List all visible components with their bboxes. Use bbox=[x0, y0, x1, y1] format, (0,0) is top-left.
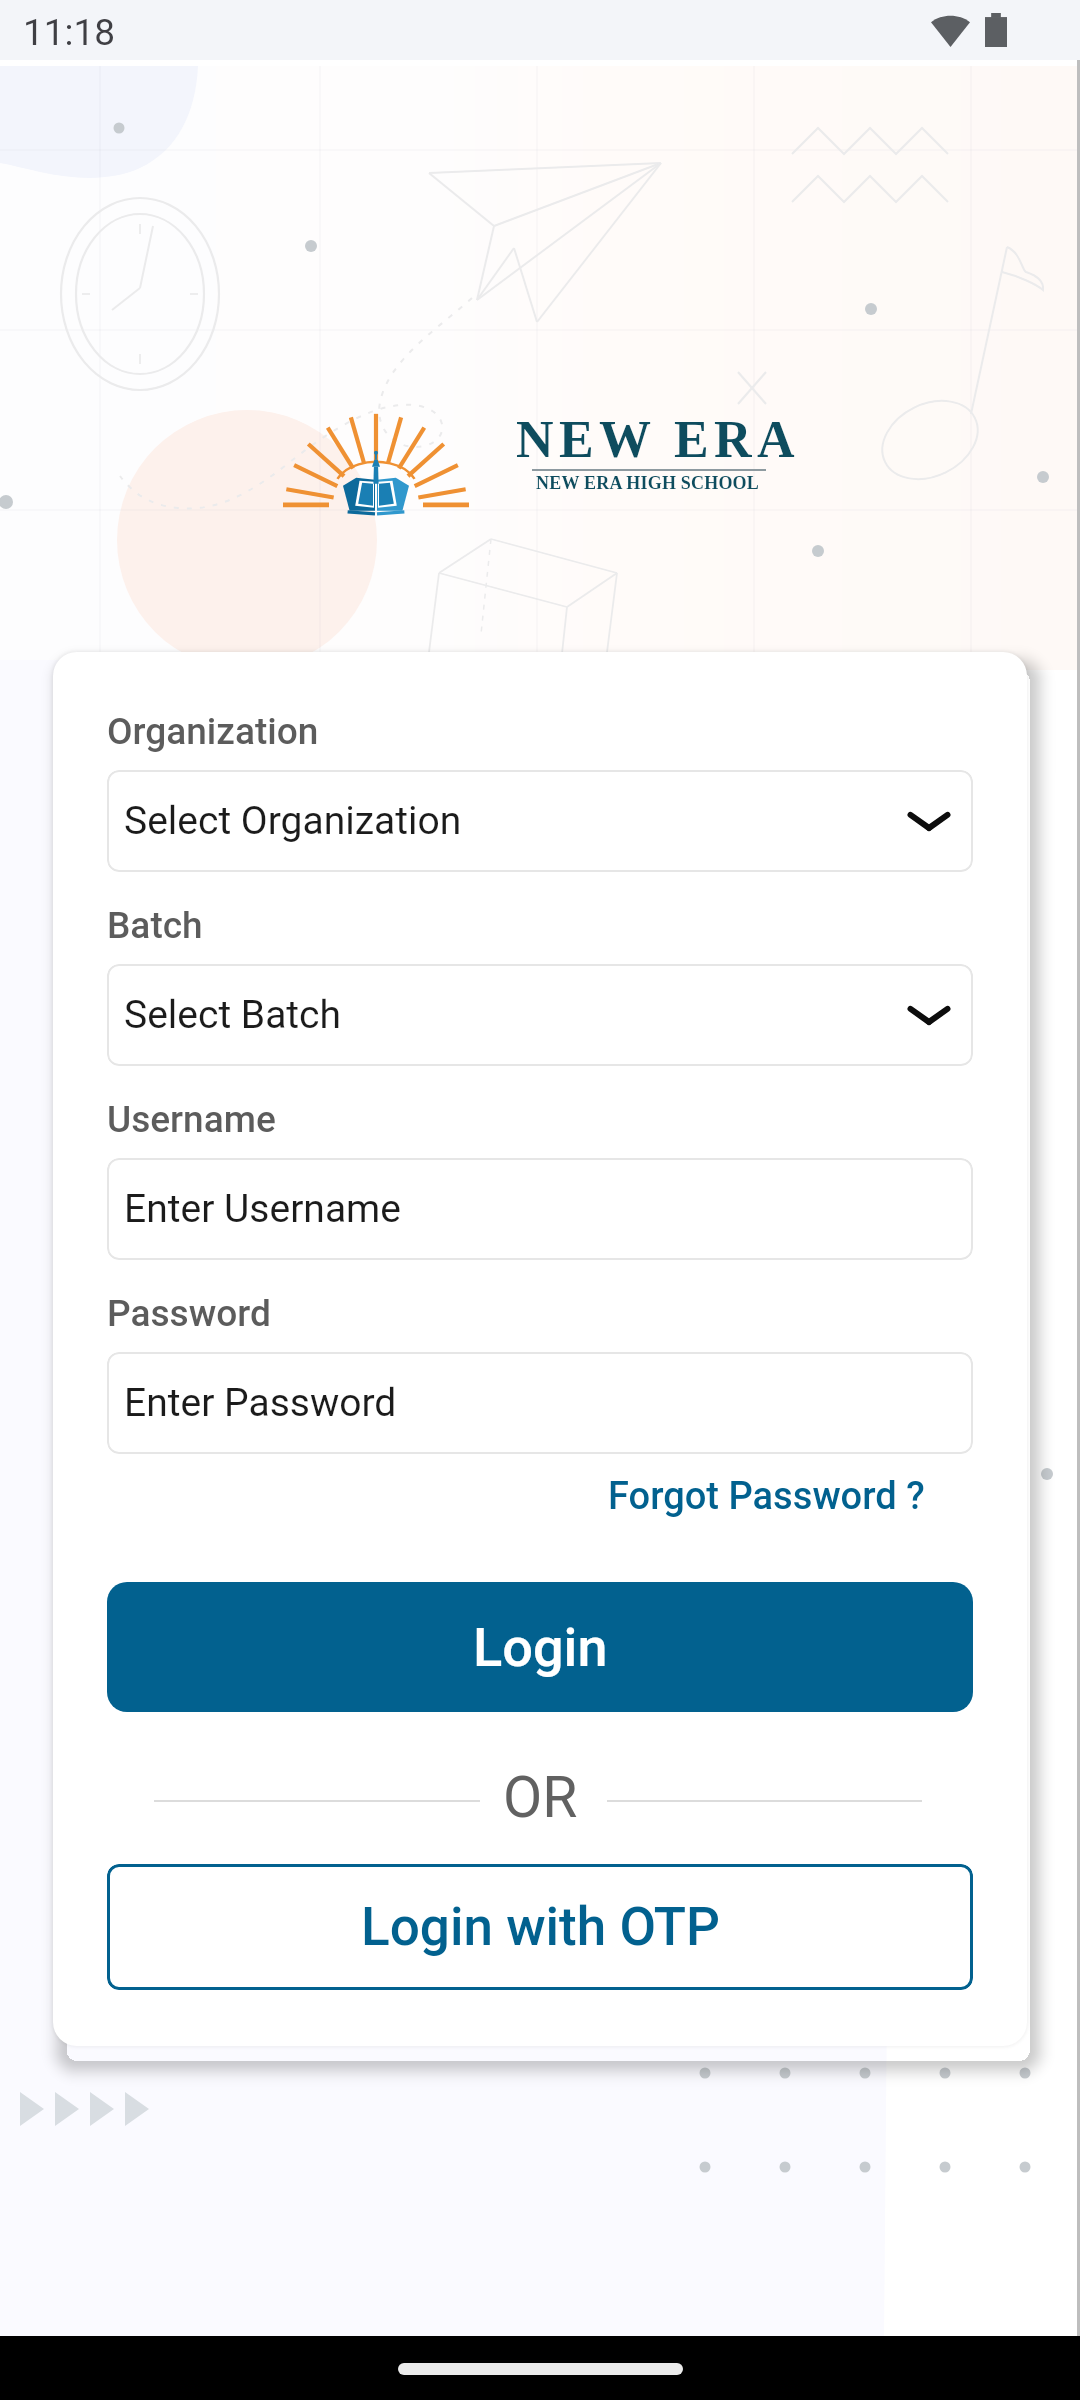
staticText: Enter Password bbox=[124, 1380, 397, 1426]
staticText: Username bbox=[107, 1098, 276, 1141]
button[interactable]: Select Batch bbox=[107, 964, 973, 1066]
button[interactable]: Forgot Password ? bbox=[505, 1464, 925, 1528]
button[interactable]: Login bbox=[107, 1582, 973, 1712]
button[interactable]: Enter Password bbox=[107, 1352, 973, 1454]
staticText: Select Organization bbox=[124, 798, 462, 844]
staticText: NEW ERA bbox=[516, 411, 800, 469]
button[interactable]: Enter Username bbox=[107, 1158, 973, 1260]
staticText: Forgot Password ? bbox=[608, 1474, 925, 1519]
staticText: 11:18 bbox=[23, 11, 116, 54]
other: Open dropdown bbox=[907, 993, 951, 1037]
staticText: Login bbox=[473, 1616, 608, 1679]
staticText: OR bbox=[503, 1764, 578, 1831]
staticText: Select Batch bbox=[124, 992, 342, 1038]
staticText: NEW ERA HIGH SCHOOL bbox=[536, 473, 760, 493]
staticText: Password bbox=[107, 1292, 271, 1335]
other: Open dropdown bbox=[907, 799, 951, 843]
staticText: Organization bbox=[107, 710, 319, 753]
button[interactable]: Select Organization bbox=[107, 770, 973, 872]
staticText: Batch bbox=[107, 904, 203, 947]
staticText: Login with OTP bbox=[361, 1896, 720, 1958]
staticText: Enter Username bbox=[124, 1186, 401, 1232]
button[interactable]: Login with OTP bbox=[107, 1864, 973, 1990]
